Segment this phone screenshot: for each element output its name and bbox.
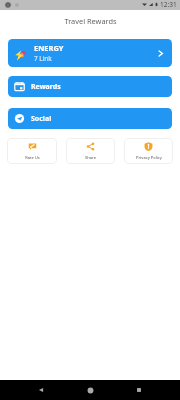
staticText: Privacy Policy bbox=[136, 155, 162, 160]
button[interactable]: Social bbox=[8, 108, 172, 129]
button[interactable]: Recents bbox=[130, 381, 148, 399]
button[interactable]: Home bbox=[81, 381, 99, 399]
staticText: Rewards bbox=[31, 82, 61, 92]
staticText: Travel Rewards bbox=[64, 16, 117, 26]
button[interactable]: Rate Us bbox=[7, 138, 57, 164]
button[interactable]: ENERGY bbox=[8, 39, 172, 67]
staticText: ENERGY bbox=[34, 43, 64, 53]
button[interactable]: Rewards bbox=[8, 76, 172, 97]
staticText: Share bbox=[85, 155, 96, 160]
button[interactable]: Privacy Policy bbox=[124, 138, 173, 164]
button[interactable]: Back bbox=[32, 381, 50, 399]
button[interactable]: Share bbox=[66, 138, 115, 164]
staticText: Rate Us bbox=[25, 155, 40, 160]
staticText: Social bbox=[31, 114, 52, 124]
staticText: 12:31 bbox=[160, 0, 177, 9]
staticText: 7 Link bbox=[34, 54, 52, 63]
